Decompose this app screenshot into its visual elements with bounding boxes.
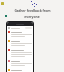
- button[interactable]: Menu: [7, 26, 33, 30]
- staticText: Gather feedback from: [14, 8, 51, 13]
- other: Menu: [8, 27, 10, 29]
- button[interactable]: [7, 39, 33, 48]
- button[interactable]: [7, 68, 33, 72]
- staticText: everyone: [24, 14, 40, 19]
- button[interactable]: [7, 59, 33, 68]
- button[interactable]: [7, 48, 33, 59]
- button[interactable]: [7, 30, 33, 39]
